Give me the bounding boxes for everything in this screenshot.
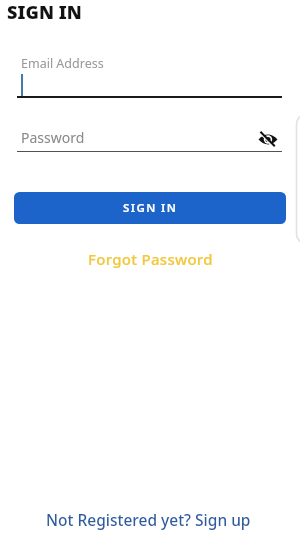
button[interactable]: Forgot Password xyxy=(88,249,213,269)
staticText: Password xyxy=(21,128,85,147)
button[interactable]: Password xyxy=(17,124,282,152)
staticText: SIGN IN xyxy=(123,200,178,216)
staticText: Email Address xyxy=(21,55,104,72)
staticText: SIGN IN xyxy=(7,0,82,25)
button[interactable]: SIGN IN xyxy=(14,192,286,224)
button[interactable]: Email Address xyxy=(17,50,282,98)
button[interactable]: Not Registered yet? Sign up xyxy=(46,509,251,530)
staticText: Forgot Password xyxy=(88,249,213,269)
staticText: Not Registered yet? Sign up xyxy=(46,509,251,530)
